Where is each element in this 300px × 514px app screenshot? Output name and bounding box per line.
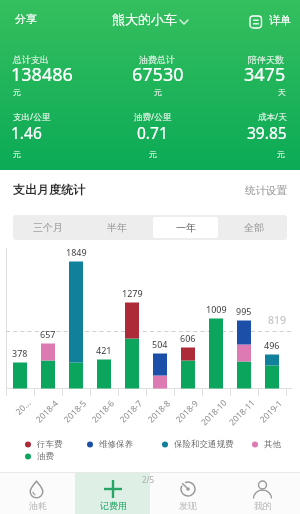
staticText: 统计设置 [245,184,287,197]
staticText: 2018-9 [173,397,200,424]
button[interactable] [150,472,225,514]
staticText: 元 [13,149,21,159]
button[interactable]: 半年 [84,217,149,238]
button[interactable] [75,472,150,514]
staticText: 天 [278,87,286,97]
staticText: 20... [13,397,32,416]
staticText: 2018-4 [33,397,60,424]
staticText: 138486 [11,62,73,87]
staticText: 总计支出 [13,54,49,65]
staticText: 39.85 [247,122,287,143]
staticText: 67530 [132,62,184,87]
staticText: 2018-8 [145,397,172,424]
staticText: 一年 [176,221,196,234]
staticText: 记费用 [100,500,127,511]
staticText: 成本/天 [258,111,287,123]
button[interactable]: 全部 [222,217,285,238]
staticText: 1849 [66,246,87,258]
staticText: 油耗 [29,500,47,511]
button[interactable]: 一年 [153,217,218,238]
staticText: 支出月度统计 [13,182,85,197]
staticText: 元 [149,149,157,159]
staticText: 陪伴天数 [248,54,284,65]
staticText: 全部 [244,221,264,234]
staticText: 496 [264,339,280,351]
staticText: 606 [180,332,196,344]
staticText: 油费总计 [139,54,175,65]
staticText: 0.71 [137,122,168,143]
staticText: 421 [96,344,112,356]
staticText: 995 [236,305,252,317]
staticText: 1279 [122,287,143,299]
button[interactable]: 分享 [4,8,48,30]
staticText: 发现 [179,500,197,511]
staticText: 分享 [15,12,37,26]
staticText: 元 [154,87,162,97]
staticText: 保险和交通规费 [174,439,234,450]
staticText: 支出/公里 [13,111,51,123]
staticText: 2018-6 [89,397,116,424]
button[interactable]: 熊大的小车 [99,8,189,30]
button[interactable] [225,472,300,514]
staticText: 行车费 [37,439,63,450]
staticText: 2019-1 [257,397,284,424]
button[interactable] [0,472,75,514]
staticText: 元 [277,149,285,159]
staticText: 半年 [107,221,127,234]
staticText: 其他 [264,439,281,450]
staticText: 熊大的小车 [112,11,177,27]
staticText: 详单 [269,13,291,27]
staticText: 元 [13,87,21,97]
staticText: 我的 [254,500,272,511]
staticText: 819 [268,313,287,327]
staticText: 2/5 [142,474,155,485]
staticText: 3475 [244,62,286,87]
button[interactable]: 三个月 [15,217,80,238]
staticText: 378 [12,347,28,359]
staticText: 2018-7 [117,397,144,424]
staticText: 1.46 [11,122,42,143]
staticText: 2018-10 [198,397,228,427]
staticText: 维修保养 [99,439,133,450]
staticText: 2018-11 [226,397,256,427]
staticText: 油费 [37,451,54,462]
button[interactable] [245,8,295,30]
staticText: 三个月 [33,221,63,234]
staticText: 657 [40,328,56,340]
staticText: 504 [152,338,168,350]
staticText: 2018-5 [61,397,88,424]
staticText: 油费/公里 [134,111,172,123]
staticText: 1009 [206,303,227,315]
